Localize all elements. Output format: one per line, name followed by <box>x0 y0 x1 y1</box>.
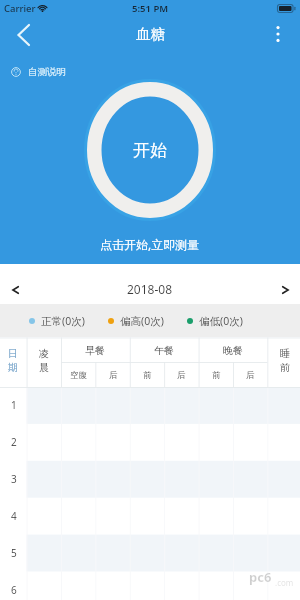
staticText: 前 <box>280 361 290 374</box>
staticText: 早餐 <box>85 344 105 357</box>
button[interactable]: Back <box>0 15 46 53</box>
button[interactable]: 1 <box>0 397 27 413</box>
staticText: 2018-08 <box>127 281 173 297</box>
button[interactable]: 6 <box>0 582 27 598</box>
button[interactable]: 开始 <box>101 96 199 204</box>
staticText: 期 <box>8 361 18 374</box>
staticText: 点击开始,立即测量 <box>100 236 200 252</box>
button[interactable]: 偏低(0次) <box>187 314 243 328</box>
button[interactable]: 自测说明 <box>11 66 66 78</box>
staticText: 晨 <box>39 361 49 374</box>
staticText: 前 <box>143 370 152 381</box>
staticText: 自测说明 <box>28 66 66 78</box>
staticText: 日 <box>8 347 18 360</box>
button[interactable]: 5 <box>0 545 27 561</box>
button[interactable]: More options <box>260 15 296 53</box>
staticText: .com <box>275 577 294 588</box>
staticText: 5:51 PM <box>132 2 169 15</box>
staticText: 5 <box>11 546 17 560</box>
button[interactable]: 2 <box>0 434 27 450</box>
staticText: 偏高(0次) <box>120 314 164 328</box>
staticText: 睡 <box>280 347 290 360</box>
staticText: 开始 <box>133 140 167 161</box>
button[interactable]: 4 <box>0 508 27 524</box>
staticText: 正常(0次) <box>41 314 85 328</box>
staticText: 6 <box>11 583 17 597</box>
button[interactable]: 正常(0次) <box>29 314 85 328</box>
staticText: 晚餐 <box>223 344 243 357</box>
staticText: Carrier <box>4 2 36 15</box>
button[interactable]: 3 <box>0 471 27 487</box>
staticText: 前 <box>212 370 221 381</box>
staticText: 后 <box>109 370 118 381</box>
staticText: 凌 <box>39 347 49 360</box>
staticText: pc6 <box>249 568 272 586</box>
staticText: 血糖 <box>136 25 165 43</box>
staticText: 2 <box>11 435 17 449</box>
staticText: 后 <box>246 370 255 381</box>
staticText: 偏低(0次) <box>199 314 243 328</box>
staticText: 空腹 <box>70 370 87 381</box>
staticText: 1 <box>11 398 17 412</box>
button[interactable]: Next month <box>270 273 300 307</box>
button[interactable]: 偏高(0次) <box>108 314 164 328</box>
staticText: 4 <box>11 509 17 523</box>
staticText: 午餐 <box>154 344 174 357</box>
button[interactable]: Previous month <box>0 273 30 307</box>
staticText: 后 <box>177 370 186 381</box>
staticText: 3 <box>11 472 17 486</box>
